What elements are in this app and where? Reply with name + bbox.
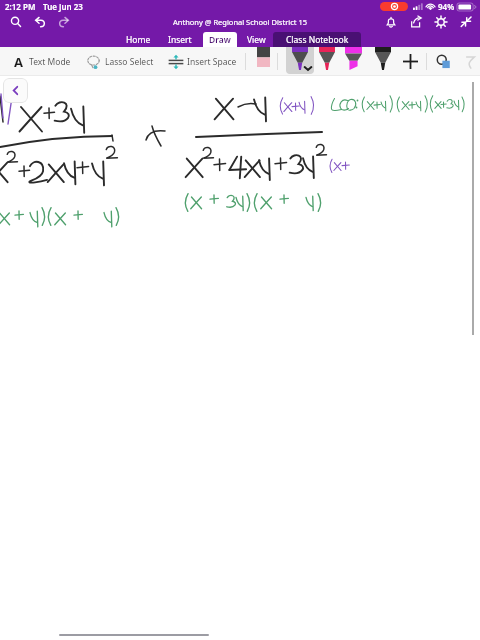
- staticText: Insert Space: [187, 56, 237, 68]
- staticText: Home: [126, 34, 151, 46]
- button[interactable]: Undo: [28, 13, 52, 30]
- button[interactable]: Black pen: [369, 47, 397, 76]
- button[interactable]: Magenta highlighter: [341, 47, 365, 76]
- staticText: Class Notebook: [286, 34, 349, 46]
- staticText: View: [247, 34, 266, 46]
- button[interactable]: Redo: [52, 13, 76, 30]
- button[interactable]: Draw: [203, 32, 237, 47]
- staticText: 2:12 PM: [5, 1, 36, 12]
- staticText: A: [14, 53, 23, 71]
- button[interactable]: Red pen: [313, 47, 341, 76]
- button[interactable]: Insert Space: [166, 47, 239, 76]
- staticText: Tue Jun 23: [43, 1, 83, 12]
- button[interactable]: Add pen: [400, 47, 420, 76]
- staticText: Insert: [168, 34, 192, 46]
- button[interactable]: Home: [123, 32, 153, 47]
- button[interactable]: Eraser: [252, 47, 275, 76]
- button[interactable]: Class Notebook: [273, 32, 361, 47]
- button[interactable]: Lasso Select: [84, 47, 156, 76]
- button[interactable]: A: [10, 47, 75, 76]
- staticText: Text Mode: [29, 56, 71, 68]
- button[interactable]: Ink to math: [460, 47, 480, 76]
- button[interactable]: Purple pen: [286, 47, 314, 76]
- button[interactable]: Notifications: [378, 13, 403, 30]
- staticText: Lasso Select: [105, 56, 154, 68]
- button[interactable]: Collapse ribbon: [453, 13, 478, 30]
- button[interactable]: Back: [3, 78, 28, 103]
- staticText: Draw: [209, 34, 231, 46]
- button[interactable]: View: [241, 32, 271, 47]
- staticText: Anthony @ Regional School District 15: [173, 17, 308, 27]
- button[interactable]: Ink to shape: [433, 47, 455, 76]
- button[interactable]: Insert: [165, 32, 195, 47]
- staticText: 94%: [438, 1, 455, 12]
- button[interactable]: Settings: [428, 13, 453, 30]
- button[interactable]: Share: [403, 13, 428, 30]
- button[interactable]: Search: [4, 13, 28, 30]
